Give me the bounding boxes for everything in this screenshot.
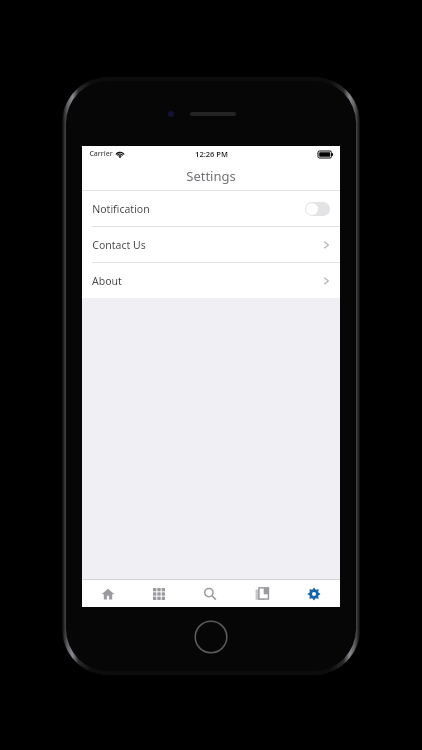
button[interactable]: About — [82, 263, 340, 298]
staticText: Carrier — [89, 149, 113, 159]
button[interactable]: Settings — [288, 580, 340, 607]
staticText: Settings — [186, 167, 236, 185]
button[interactable]: Home — [82, 580, 133, 607]
button[interactable]: Apps — [133, 580, 184, 607]
button[interactable]: Contact Us — [82, 227, 340, 262]
button[interactable]: Search — [184, 580, 236, 607]
button[interactable]: Library — [236, 580, 288, 607]
button[interactable]: Notification toggle, off — [305, 202, 330, 216]
staticText: Contact Us — [92, 238, 146, 252]
staticText: Notification — [92, 202, 150, 216]
button[interactable]: Notification — [82, 191, 340, 226]
staticText: 12:26 PM — [195, 149, 228, 159]
other: Home button — [194, 620, 228, 654]
staticText: About — [92, 274, 122, 288]
